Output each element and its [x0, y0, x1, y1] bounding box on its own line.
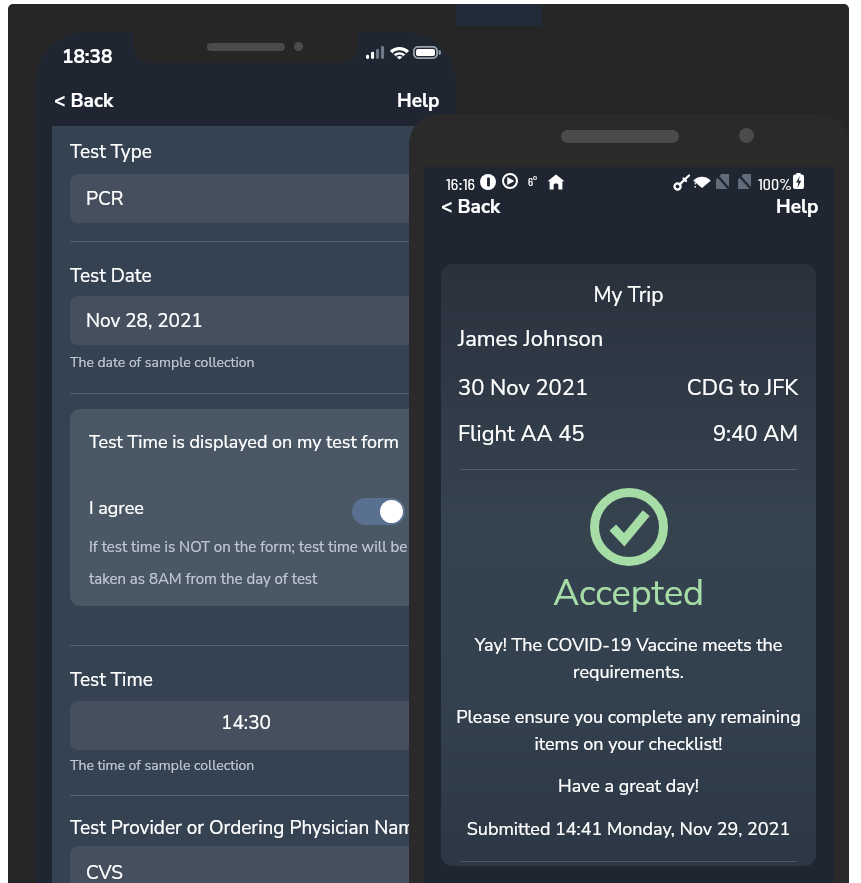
staticText: The date of sample collection [70, 353, 255, 372]
button[interactable]: CVS [70, 846, 422, 883]
staticText: 18:38 [62, 44, 113, 70]
staticText: requirements. [441, 660, 816, 685]
staticText: Nov 28, 2021 [86, 308, 203, 334]
staticText: 6° [528, 175, 538, 188]
staticText: taken as 8AM from the day of test [89, 569, 318, 589]
button[interactable]: PCR [70, 174, 422, 223]
button[interactable]: Help [397, 88, 440, 114]
button[interactable]: < Back [54, 88, 114, 114]
staticText: My Trip [441, 281, 816, 310]
button[interactable]: Help [776, 194, 819, 220]
staticText: If test time is NOT on the form; test ti… [89, 537, 408, 557]
staticText: Test Date [70, 263, 152, 289]
staticText: I agree [89, 496, 144, 521]
button[interactable]: Nov 28, 2021 [70, 296, 422, 345]
staticText: Submitted 14:41 Monday, Nov 29, 2021 [441, 817, 816, 842]
staticText: 30 Nov 2021 [458, 373, 589, 403]
staticText: CVS [86, 860, 124, 883]
staticText: The time of sample collection [70, 756, 255, 775]
staticText: Test Time [70, 667, 153, 693]
button[interactable]: I agree toggle [352, 498, 405, 525]
staticText: PCR [86, 186, 124, 212]
staticText: 100% [758, 174, 793, 193]
staticText: items on your checklist! [441, 732, 816, 757]
staticText: Please ensure you complete any remaining [441, 705, 816, 730]
staticText: Test Provider or Ordering Physician Name [70, 815, 425, 841]
staticText: Test Type [70, 139, 152, 165]
staticText: 9:40 AM [441, 419, 798, 449]
staticText: Flight AA 45 [458, 419, 585, 449]
staticText: Have a great day! [441, 774, 816, 799]
staticText: Accepted [441, 569, 816, 618]
staticText: Test Time is displayed on my test form [89, 430, 399, 455]
button[interactable]: 14:30 [70, 701, 422, 750]
button[interactable]: < Back [441, 194, 501, 220]
staticText: 14:30 [70, 710, 422, 736]
staticText: James Johnson [458, 324, 604, 354]
staticText: 16:16 [446, 174, 475, 193]
staticText: Yay! The COVID-19 Vaccine meets the [441, 633, 816, 658]
staticText: CDG to JFK [441, 373, 798, 403]
